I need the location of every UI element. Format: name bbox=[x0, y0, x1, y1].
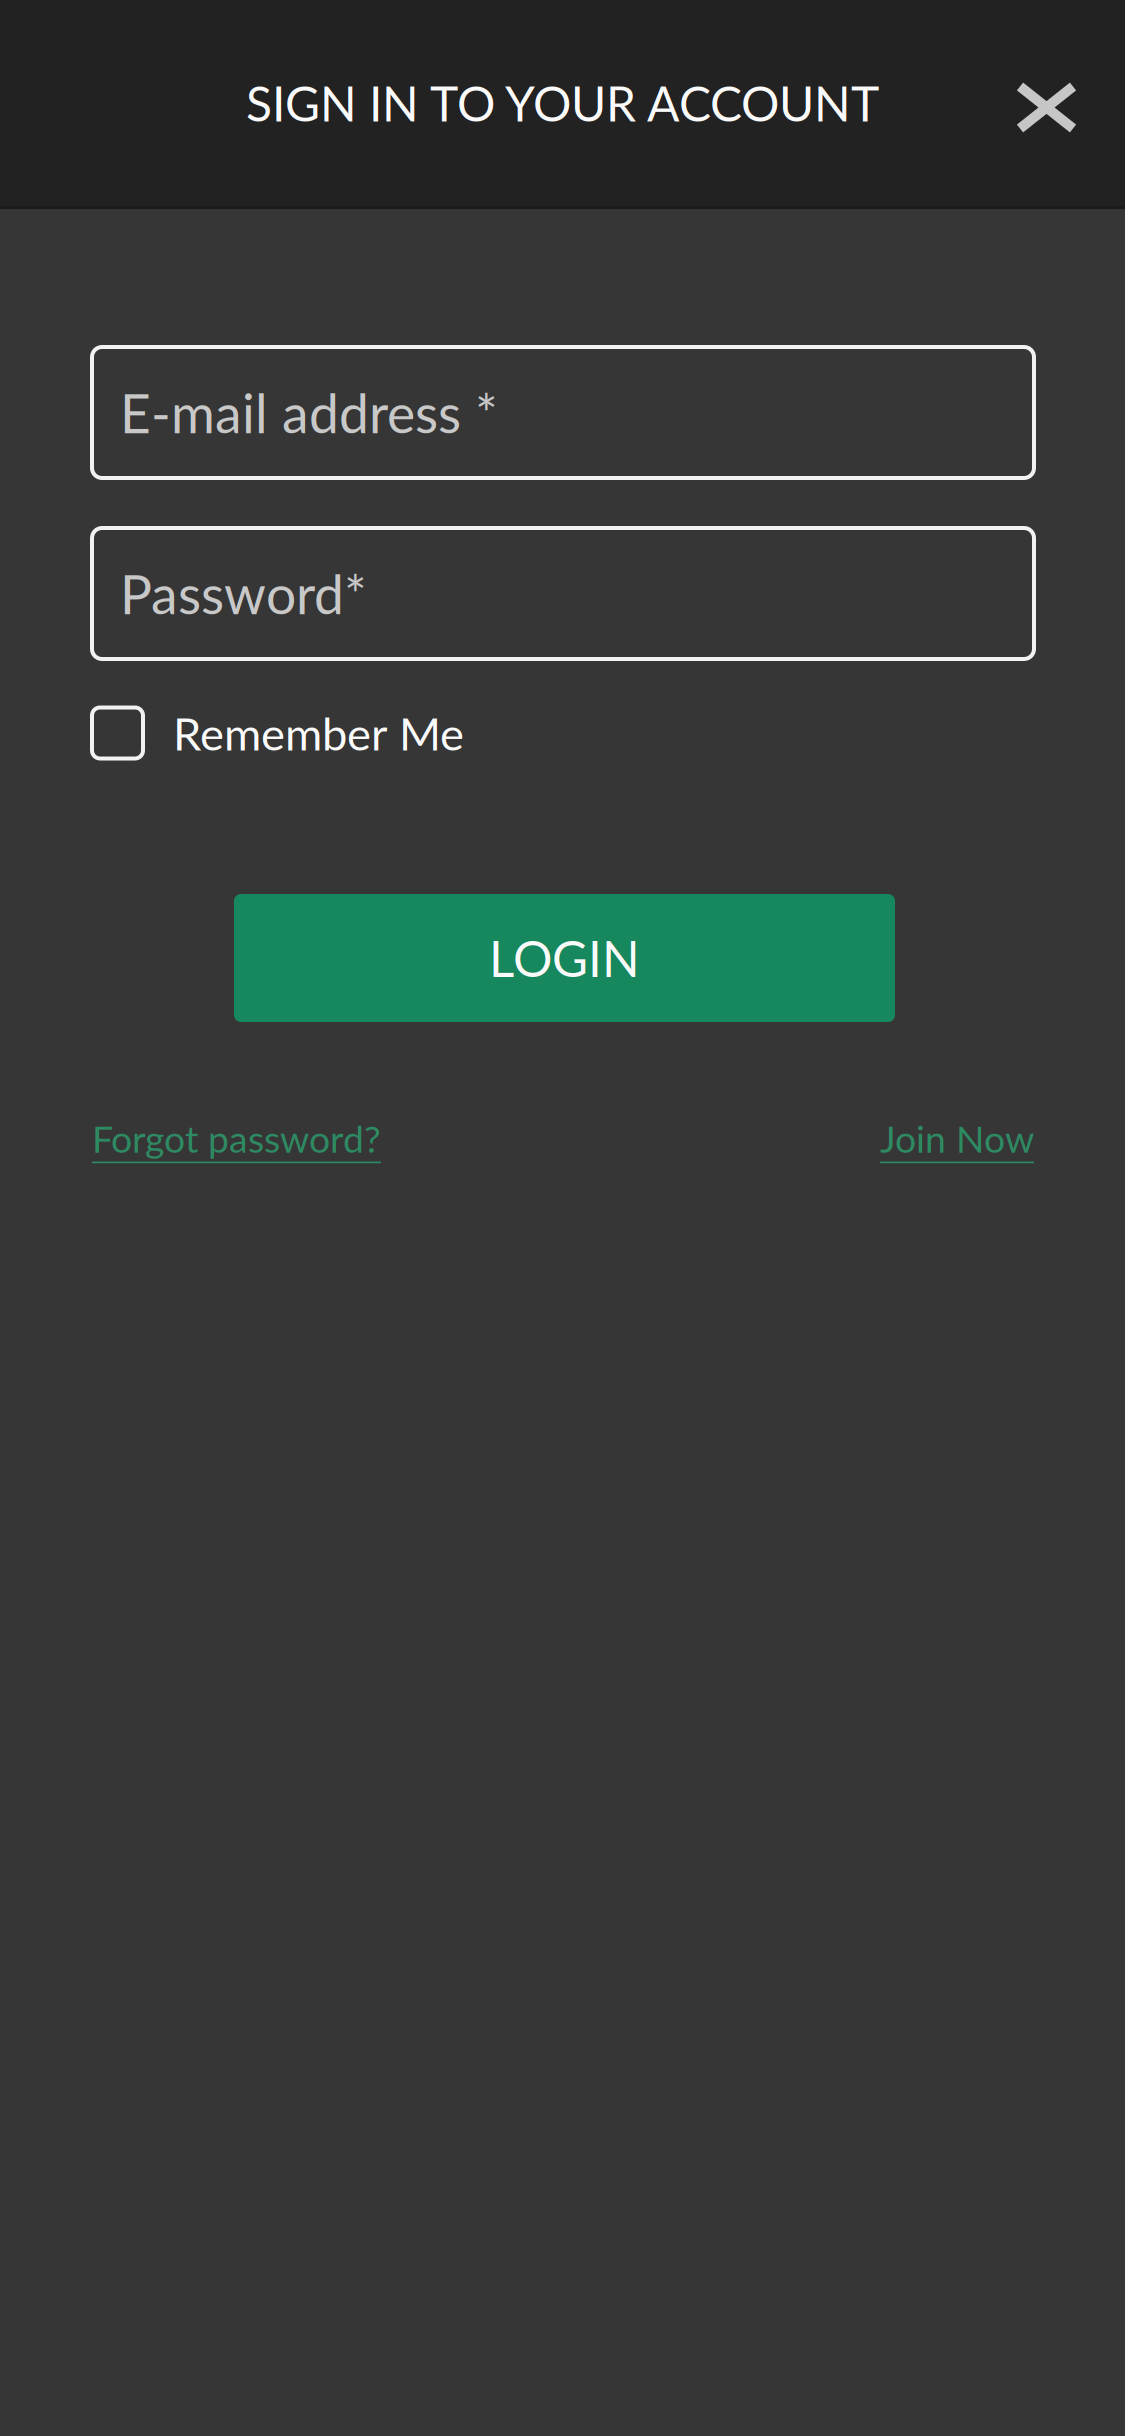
staticText: Join Now bbox=[880, 1116, 1034, 1161]
staticText: E-mail address * bbox=[120, 380, 498, 444]
staticText: SIGN IN TO YOUR ACCOUNT bbox=[246, 74, 879, 132]
staticText: Remember Me bbox=[173, 706, 464, 760]
button[interactable]: Forgot password? bbox=[92, 1116, 381, 1161]
staticText: LOGIN bbox=[489, 928, 640, 988]
button[interactable]: Close bbox=[971, 33, 1125, 172]
button[interactable]: Join Now bbox=[880, 1116, 1034, 1161]
button[interactable]: LOGIN bbox=[234, 894, 895, 1022]
button[interactable]: Remember Me bbox=[92, 695, 1034, 771]
staticText: Forgot password? bbox=[92, 1116, 381, 1161]
staticText: Password* bbox=[120, 561, 367, 625]
